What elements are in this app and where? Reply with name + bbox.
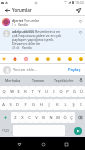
staticText: Paylaş xyxy=(68,67,81,72)
button[interactable]: T xyxy=(29,86,36,97)
staticText: 45 dk xyxy=(12,46,20,50)
button[interactable]: Send xyxy=(74,127,82,135)
staticText: Yorum ekle... xyxy=(13,67,67,72)
button[interactable]: V xyxy=(33,112,40,123)
staticText: L xyxy=(64,102,67,107)
button[interactable]: E xyxy=(15,86,22,97)
staticText: E xyxy=(17,89,20,94)
staticText: Ş xyxy=(72,102,75,107)
button[interactable]: R xyxy=(22,86,29,97)
button[interactable]: N xyxy=(47,112,54,123)
staticText: X xyxy=(21,115,24,120)
button[interactable]: Flower emoji xyxy=(23,56,29,62)
button[interactable]: U xyxy=(43,86,50,97)
staticText: . xyxy=(67,128,69,133)
staticText: Ğ xyxy=(73,89,76,94)
button[interactable]: W xyxy=(8,86,15,97)
staticText: Yorumlar xyxy=(12,7,32,13)
staticText: adelputik666 Resimleriniz en çok hoşunuz… xyxy=(12,29,63,46)
button[interactable]: Q xyxy=(0,86,8,97)
button[interactable]: Comma xyxy=(11,125,13,136)
button[interactable]: Tamam xyxy=(25,75,51,85)
button[interactable]: Back xyxy=(3,6,11,14)
staticText: Merhaba xyxy=(5,78,21,83)
button[interactable]: C xyxy=(26,112,33,123)
staticText: I xyxy=(53,89,55,94)
button[interactable]: adelputik666 Resimleriniz en çok hoşunuz… xyxy=(0,28,85,51)
button[interactable]: djeriet Yorumlar xyxy=(0,17,85,28)
button[interactable]: I xyxy=(77,99,85,110)
button[interactable]: G xyxy=(29,99,37,110)
button[interactable]: Yanıtla xyxy=(18,23,28,27)
button[interactable]: Teşekkürler xyxy=(51,75,77,85)
staticText: W xyxy=(10,89,14,94)
button[interactable]: smile emoji xyxy=(34,56,40,62)
button[interactable]: Merhaba xyxy=(0,75,25,85)
button[interactable]: Ş xyxy=(69,99,77,110)
button[interactable]: H xyxy=(37,99,45,110)
button[interactable]: sad emoji xyxy=(56,56,62,62)
button[interactable]: F xyxy=(21,99,29,110)
staticText: I xyxy=(80,102,82,107)
staticText: S xyxy=(9,102,12,107)
button[interactable]: clap emoji xyxy=(78,56,84,62)
button[interactable]: A xyxy=(0,99,7,110)
staticText: Z xyxy=(14,115,17,120)
button[interactable]: Ç xyxy=(68,112,75,123)
staticText: 1 s xyxy=(12,23,16,27)
button[interactable]: Share xyxy=(74,6,82,14)
button[interactable]: D xyxy=(14,99,21,110)
button[interactable]: Home xyxy=(38,139,48,149)
button[interactable]: Fire emoji xyxy=(12,56,18,62)
button[interactable]: Ğ xyxy=(71,86,78,97)
staticText: D xyxy=(16,102,19,107)
button[interactable]: S xyxy=(7,99,14,110)
button[interactable]: Like xyxy=(77,29,83,35)
staticText: Teşekkürler xyxy=(54,78,74,83)
button[interactable]: Heart emoji xyxy=(1,56,7,62)
button[interactable]: Period xyxy=(65,125,70,136)
button[interactable]: I xyxy=(50,86,57,97)
button[interactable]: ?123 xyxy=(0,125,11,136)
button[interactable]: Yanıtla xyxy=(22,46,32,50)
button[interactable]: P xyxy=(64,86,71,97)
staticText: M xyxy=(56,115,60,120)
staticText: Ö xyxy=(63,115,67,120)
staticText: Ç xyxy=(70,115,73,120)
button[interactable]: Back xyxy=(14,139,24,149)
staticText: ?123 xyxy=(2,129,9,133)
button[interactable]: Z xyxy=(11,112,19,123)
button[interactable]: Like xyxy=(77,18,83,24)
button[interactable]: J xyxy=(45,99,53,110)
staticText: Tamam xyxy=(32,78,45,83)
button[interactable]: B xyxy=(40,112,47,123)
staticText: R xyxy=(24,89,27,94)
staticText: A xyxy=(2,102,5,107)
button[interactable]: laugh emoji xyxy=(45,56,51,62)
staticText: C xyxy=(28,115,31,120)
staticText: T xyxy=(31,89,34,94)
button[interactable]: Paylaş xyxy=(67,66,82,73)
button[interactable]: M xyxy=(54,112,61,123)
button[interactable]: Backspace xyxy=(75,112,85,123)
staticText: 18:04 xyxy=(75,0,84,5)
staticText: O xyxy=(59,89,63,94)
button[interactable]: Voice input xyxy=(77,75,85,85)
staticText: Y xyxy=(38,89,41,94)
button[interactable]: Y xyxy=(36,86,43,97)
staticText: U xyxy=(45,89,48,94)
staticText: K xyxy=(56,102,59,107)
button[interactable]: wow emoji xyxy=(67,56,73,62)
button[interactable]: Ö xyxy=(61,112,68,123)
button[interactable]: Ü xyxy=(78,86,85,97)
button[interactable]: K xyxy=(53,99,61,110)
button[interactable]: Recent apps xyxy=(61,139,71,149)
staticText: G xyxy=(32,102,35,107)
button[interactable]: X xyxy=(19,112,26,123)
button[interactable]: L xyxy=(61,99,69,110)
button[interactable]: Shift xyxy=(0,112,11,123)
staticText: V xyxy=(35,115,38,120)
button[interactable]: O xyxy=(57,86,64,97)
staticText: P xyxy=(66,89,69,94)
